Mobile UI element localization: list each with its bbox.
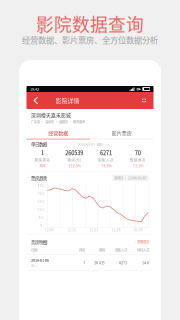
staticText: 12/22 [89, 228, 98, 232]
staticText: 6271 [100, 149, 112, 157]
staticText: 影院数据查询 [36, 11, 144, 37]
button[interactable]: More [137, 92, 150, 109]
button[interactable]: 2016-01-06 [26, 255, 153, 270]
staticText: 19:42 [30, 86, 39, 92]
staticText: 14.6 [142, 260, 149, 265]
staticText: 持平 [39, 163, 45, 168]
staticText: 01/05 [134, 228, 143, 232]
button[interactable]: 经营数据 [26, 127, 90, 139]
staticText: 0 [40, 223, 42, 227]
staticText: 经营数据、影片票房、全方位数据分析 [22, 34, 158, 46]
staticText: 票房趋势 [31, 175, 47, 181]
staticText: 排名 [79, 247, 85, 252]
staticText: ↑2.1% [132, 163, 143, 168]
staticText: 日期 [31, 247, 37, 252]
staticText: 2016-01-07 周四 [77, 142, 102, 147]
button[interactable]: 自然日 · 12/08-01/07 [112, 175, 149, 181]
staticText: ↑8.3% [100, 163, 111, 168]
staticText: 6271 [119, 260, 127, 265]
button[interactable]: Back [29, 92, 42, 109]
staticText: 场均人次 [137, 247, 149, 252]
staticText: ↑12.5% [68, 163, 81, 168]
staticText: 深圳橙天嘉禾影城 [31, 111, 71, 118]
staticText: 观影人次 [115, 247, 127, 252]
staticText: 260539 [65, 149, 83, 157]
staticText: 影院详情 [55, 96, 79, 105]
staticText: 2016-01-06 [31, 257, 49, 263]
staticText: 放映场次 [130, 157, 146, 163]
staticText: 70 [135, 149, 141, 157]
staticText: 观影人次 [98, 157, 114, 163]
staticText: 8万 [39, 215, 44, 219]
staticText: › 查看更多 [135, 239, 149, 244]
staticText: 1 [83, 260, 85, 265]
staticText: 1 [41, 149, 44, 157]
staticText: 自然日 · 12/08-01/07 [114, 176, 147, 180]
staticText: 26.0万 [94, 260, 105, 265]
staticText: 24万 [38, 199, 45, 203]
staticText: 影片票房 [112, 129, 132, 136]
staticText: 票房(元) [67, 157, 81, 163]
staticText: 12/15 [67, 228, 76, 232]
staticText: 票房 [99, 247, 105, 252]
staticText: 票房明细 [31, 239, 47, 245]
staticText: 经营数据 [48, 129, 68, 136]
staticText: 单日数据 [31, 141, 47, 147]
staticText: 票房排名 [34, 157, 50, 163]
staticText: 32万 [38, 191, 45, 196]
button[interactable]: › 查看更多 [135, 239, 149, 244]
staticText: 12/08 [45, 228, 54, 232]
staticText: 12/29 [112, 228, 121, 232]
staticText: 广东省 · 深圳市 · 福田区 · 橙天嘉禾 [31, 119, 85, 124]
button[interactable]: 影片票房 [90, 127, 153, 139]
staticText: 16万 [38, 207, 45, 211]
staticText: 周三 [31, 263, 37, 268]
staticText: 40万 [38, 183, 45, 188]
